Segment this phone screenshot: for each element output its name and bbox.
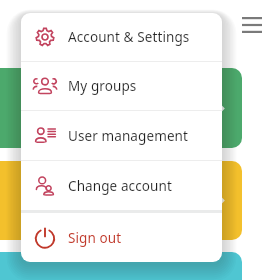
staticText: My groups: [68, 77, 137, 95]
button[interactable]: User management: [21, 111, 222, 160]
button[interactable]: Menu: [236, 9, 268, 41]
staticText: Sign out: [68, 229, 122, 247]
button[interactable]: Sign out: [21, 213, 222, 262]
staticText: User management: [68, 127, 189, 145]
staticText: Account & Settings: [68, 28, 190, 46]
staticText: Change account: [68, 177, 172, 195]
button[interactable]: [0, 68, 242, 148]
button[interactable]: [0, 252, 242, 280]
button[interactable]: Account & Settings: [21, 13, 222, 61]
button[interactable]: Change account: [21, 161, 222, 210]
button[interactable]: My groups: [21, 62, 222, 110]
button[interactable]: [0, 161, 242, 240]
